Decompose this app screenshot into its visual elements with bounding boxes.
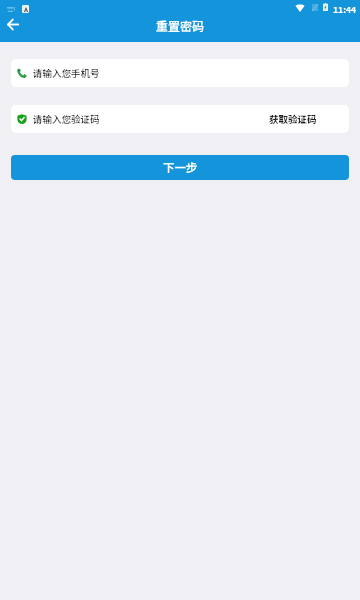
staticText: 11:44 [333, 3, 357, 15]
staticText: 请输入您验证码 [33, 112, 100, 126]
button[interactable]: 获取验证码 [269, 112, 317, 126]
staticText: 请输入您手机号 [33, 66, 100, 80]
staticText: 重置密码 [156, 17, 205, 34]
button[interactable]: 请输入您手机号 [11, 59, 349, 87]
button[interactable]: 下一步 [11, 155, 349, 180]
button[interactable]: Back [0, 11, 26, 37]
staticText: 获取验证码 [269, 112, 317, 126]
staticText: 下一步 [163, 159, 198, 176]
